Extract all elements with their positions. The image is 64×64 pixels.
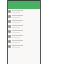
- button[interactable]: [7, 9, 41, 14]
- button[interactable]: [7, 39, 41, 44]
- button[interactable]: [7, 24, 41, 29]
- button[interactable]: [7, 29, 41, 34]
- button[interactable]: [7, 34, 41, 39]
- button[interactable]: [7, 14, 41, 19]
- button[interactable]: [7, 19, 41, 24]
- button[interactable]: [7, 44, 41, 49]
